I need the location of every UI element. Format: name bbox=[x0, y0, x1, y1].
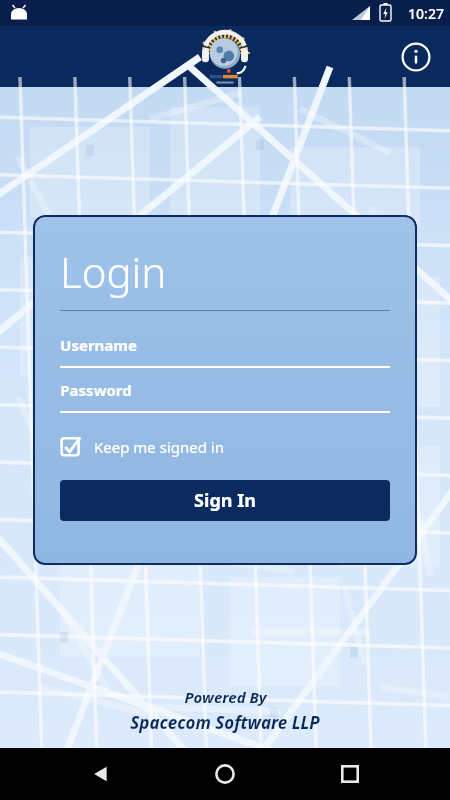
button[interactable]: Username bbox=[60, 335, 390, 368]
staticText: Spacecom Software LLP bbox=[130, 711, 320, 734]
button[interactable]: Keep me signed in bbox=[60, 431, 390, 462]
staticText: Powered By bbox=[184, 687, 267, 707]
staticText: 10:27 bbox=[408, 4, 444, 23]
button[interactable]: Info bbox=[396, 37, 436, 77]
button[interactable]: Password bbox=[60, 380, 390, 413]
button[interactable]: Home bbox=[201, 750, 249, 798]
button[interactable]: Sign In bbox=[60, 480, 390, 521]
button[interactable]: Recents bbox=[326, 750, 374, 798]
staticText: Login bbox=[60, 243, 167, 300]
staticText: Sign In bbox=[194, 488, 256, 513]
button[interactable]: Back bbox=[77, 750, 125, 798]
staticText: Keep me signed in bbox=[94, 437, 224, 457]
staticText: Password bbox=[60, 380, 132, 400]
staticText: Username bbox=[60, 335, 137, 355]
